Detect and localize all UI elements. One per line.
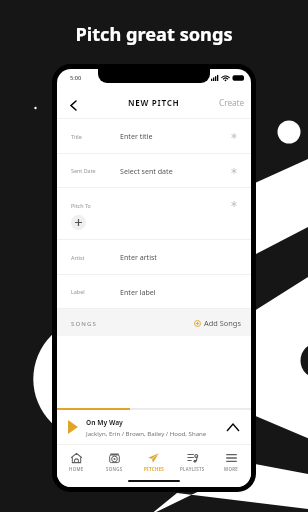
button[interactable]: Add pitch recipient — [71, 215, 86, 230]
staticText: Enter label — [120, 287, 156, 297]
staticText: Label — [71, 288, 85, 295]
button[interactable]: Expand player — [226, 420, 240, 434]
staticText: NEW PITCH — [128, 97, 180, 108]
button[interactable]: SONGS — [95, 445, 134, 479]
button[interactable]: PITCHES — [134, 445, 173, 479]
staticText: 5:00 — [70, 74, 82, 82]
staticText: Pitch great songs — [0, 22, 308, 47]
staticText: Enter title — [120, 131, 153, 141]
staticText: SONGS — [71, 319, 98, 327]
staticText: PITCHES — [144, 466, 164, 472]
button[interactable]: Sent Date — [57, 154, 251, 187]
button[interactable]: Create — [219, 97, 245, 108]
staticText: Title — [71, 133, 82, 140]
staticText: Artist — [71, 254, 85, 261]
staticText: Sent Date — [71, 167, 96, 174]
button[interactable]: Artist — [57, 240, 251, 274]
staticText: Create — [219, 97, 245, 108]
button[interactable]: Back — [61, 93, 85, 117]
staticText: SONGS — [106, 466, 123, 472]
staticText: MORE — [224, 466, 239, 472]
button[interactable]: Pitch To — [57, 188, 251, 239]
button[interactable]: PLAYLISTS — [173, 445, 212, 479]
button[interactable]: Add Songs — [194, 318, 241, 328]
button[interactable]: Label — [57, 275, 251, 308]
button[interactable]: Title — [57, 119, 251, 153]
button[interactable]: MORE — [212, 445, 251, 479]
staticText: Select sent date — [120, 166, 173, 176]
staticText: Add Songs — [204, 318, 241, 328]
staticText: Enter artist — [120, 252, 157, 262]
staticText: HOME — [69, 466, 84, 472]
staticText: Jacklyn, Erin / Brown, Bailey / Hood, Sh… — [86, 429, 207, 437]
button[interactable]: HOME — [57, 445, 95, 479]
staticText: PLAYLISTS — [180, 466, 205, 472]
staticText: On My Way — [86, 418, 123, 427]
staticText: Pitch To — [71, 202, 91, 209]
